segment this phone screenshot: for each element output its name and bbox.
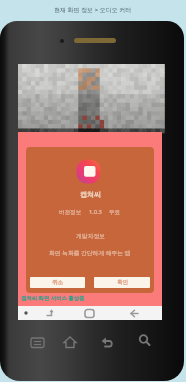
staticText: 캡쳐씨 xyxy=(80,190,101,198)
staticText: 현재 화면 정보 > 오디오 커터 xyxy=(54,6,132,14)
staticText: 버전정보 xyxy=(59,209,82,216)
staticText: 1.0.3 xyxy=(89,208,102,216)
button[interactable]: Navigate back xyxy=(129,308,140,319)
button[interactable]: Search xyxy=(137,333,152,348)
button[interactable]: Menu xyxy=(30,336,45,351)
button[interactable]: More options xyxy=(23,310,29,316)
button[interactable]: Home xyxy=(63,335,78,350)
staticText: 개발자정보 xyxy=(76,232,105,239)
staticText: 화면 녹화를 간단하게 해주는 앱 xyxy=(49,249,131,257)
staticText: 캡쳐씨 화면 서비스 활성중 xyxy=(21,294,85,301)
button[interactable]: 취소 xyxy=(30,277,85,288)
button[interactable]: 확인 xyxy=(94,277,150,288)
button[interactable]: Back xyxy=(45,308,55,318)
staticText: 확인 xyxy=(117,279,128,286)
button[interactable]: Back xyxy=(100,335,115,350)
button[interactable]: Home xyxy=(84,308,95,319)
staticText: 무료 xyxy=(109,209,121,216)
staticText: 취소 xyxy=(52,279,63,286)
